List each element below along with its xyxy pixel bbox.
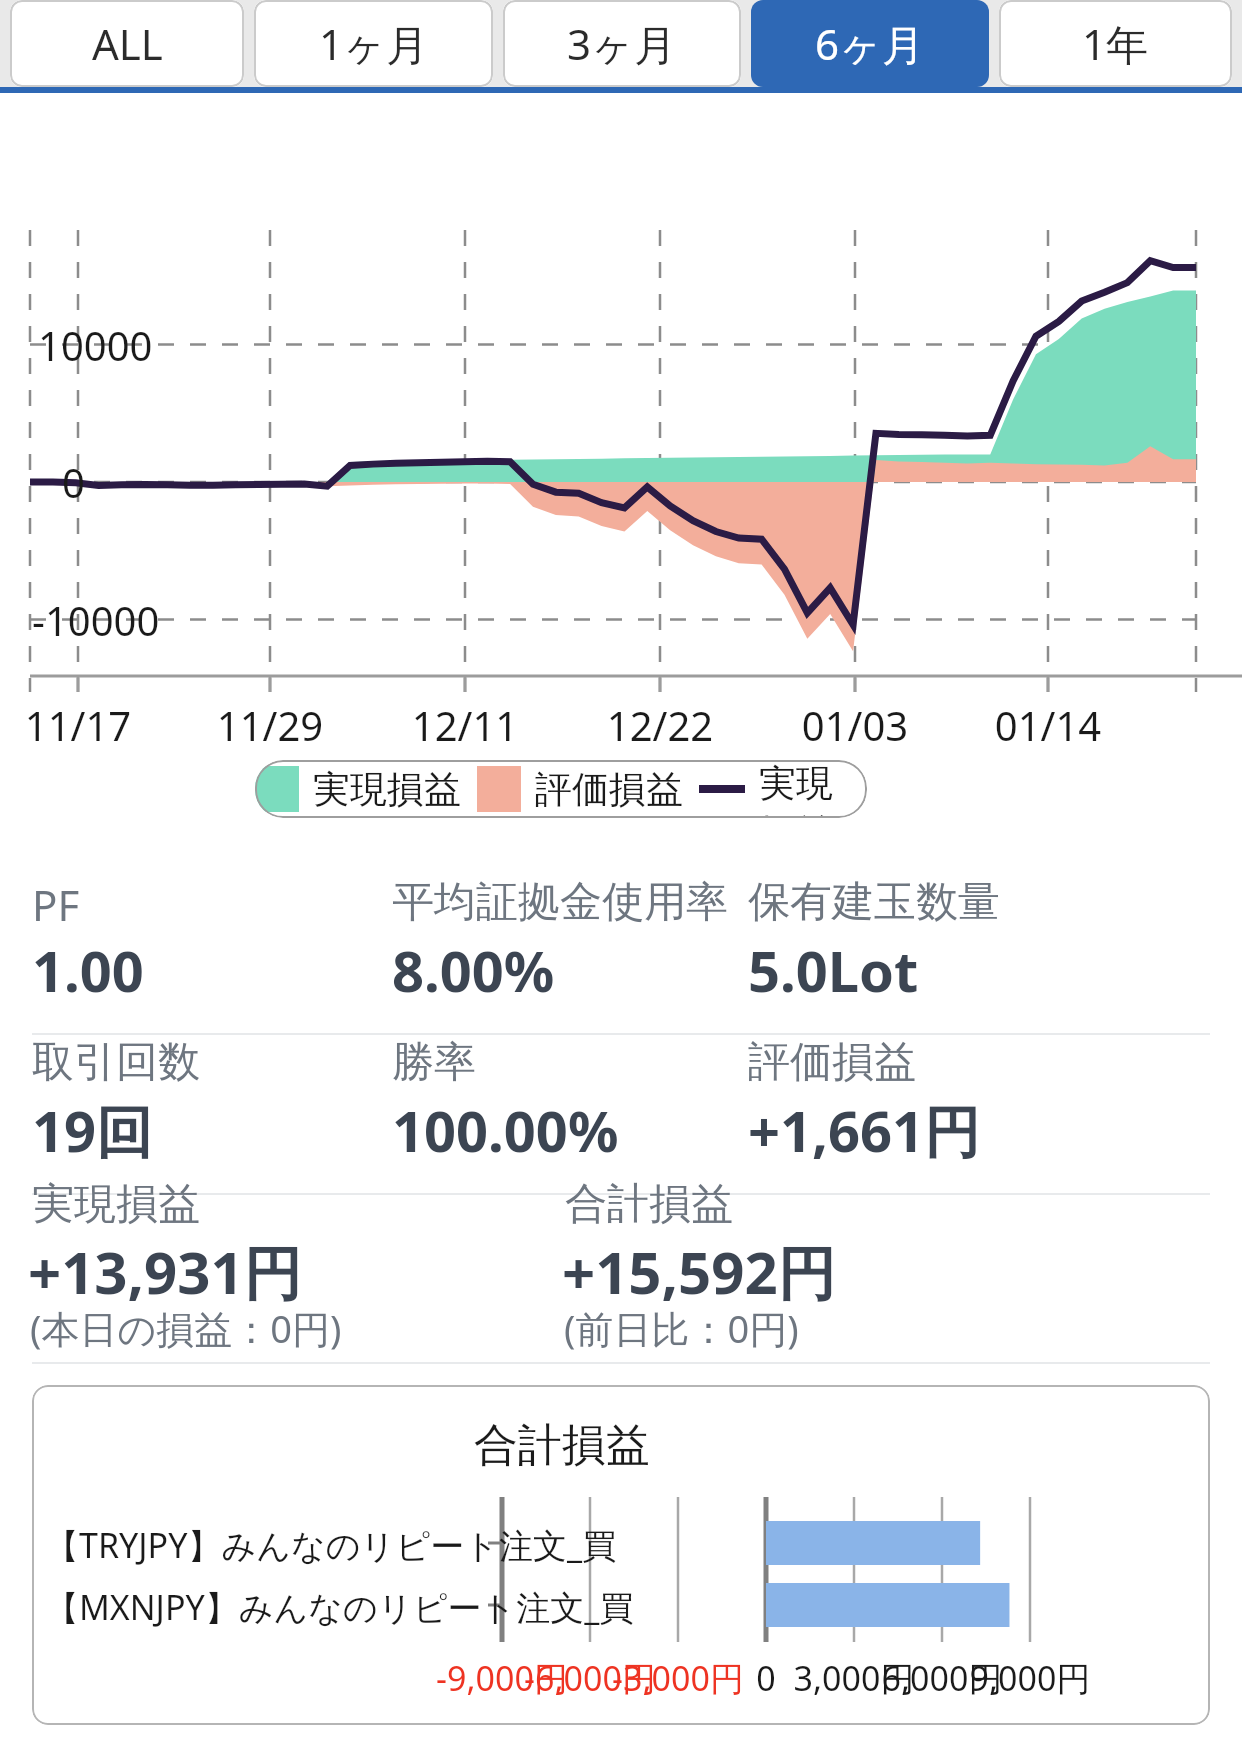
staticText: 【TRYJPY】みんなのリピート注文_買 — [45, 1522, 617, 1568]
staticText: 合計損益 — [442, 1418, 682, 1473]
staticText: 勝率 — [392, 1036, 476, 1089]
staticText: 評価損益 — [535, 766, 683, 813]
button[interactable]: 6ヶ月 — [751, 0, 989, 87]
staticText: 01/03 — [735, 698, 975, 752]
staticText: 100.00% — [392, 1092, 619, 1168]
staticText: 【MXNJPY】みんなのリピート注文_買 — [45, 1584, 634, 1630]
staticText: 取引回数 — [32, 1036, 200, 1089]
staticText: +13,931円 — [28, 1232, 302, 1311]
staticText: -10000 — [32, 593, 160, 647]
staticText: ALL — [92, 15, 163, 72]
staticText: 12/22 — [540, 698, 780, 752]
staticText: 11/29 — [150, 698, 390, 752]
staticText: 合計損益 — [565, 1178, 733, 1231]
staticText: 19回 — [32, 1092, 153, 1168]
button[interactable]: 1年 — [999, 0, 1232, 87]
staticText: +15,592円 — [562, 1232, 836, 1311]
button[interactable]: 実現損益 — [255, 760, 867, 818]
button[interactable]: ALL — [10, 0, 244, 87]
staticText: 3,000円 — [734, 1655, 974, 1701]
button[interactable] — [32, 1385, 1210, 1725]
staticText: 評価損益 — [748, 1036, 916, 1089]
staticText: 実現損益 — [313, 766, 461, 813]
staticText: 10000 — [38, 318, 153, 372]
staticText: 平均証拠金使用率 — [392, 876, 728, 929]
staticText: 01/14 — [928, 698, 1168, 752]
staticText: 0 — [62, 455, 85, 509]
button[interactable]: 1ヶ月 — [254, 0, 493, 87]
button[interactable]: 3ヶ月 — [503, 0, 741, 87]
staticText: 12/11 — [345, 698, 585, 752]
staticText: 1.00 — [32, 932, 144, 1008]
staticText: 5.0Lot — [748, 932, 919, 1008]
staticText: 実現損益＋評価損益 — [759, 760, 867, 818]
staticText: 6,000円 — [822, 1655, 1062, 1701]
staticText: -6,000円 — [470, 1655, 710, 1701]
staticText: 実現損益 — [32, 1178, 200, 1231]
staticText: 0 — [646, 1655, 886, 1701]
staticText: 8.00% — [392, 932, 555, 1008]
staticText: 保有建玉数量 — [748, 876, 1000, 929]
staticText: 6ヶ月 — [815, 15, 925, 72]
staticText: 1ヶ月 — [319, 15, 429, 72]
staticText: (前日比：0円) — [564, 1302, 799, 1354]
staticText: 1年 — [1082, 15, 1149, 72]
staticText: 3ヶ月 — [567, 15, 677, 72]
staticText: 9,000円 — [910, 1655, 1150, 1701]
staticText: -9,000円 — [382, 1655, 622, 1701]
staticText: PF — [32, 876, 80, 933]
staticText: +1,661円 — [748, 1092, 981, 1168]
staticText: (本日の損益：0円) — [30, 1302, 342, 1354]
staticText: -3,000円 — [558, 1655, 798, 1701]
staticText: 11/17 — [0, 698, 198, 752]
